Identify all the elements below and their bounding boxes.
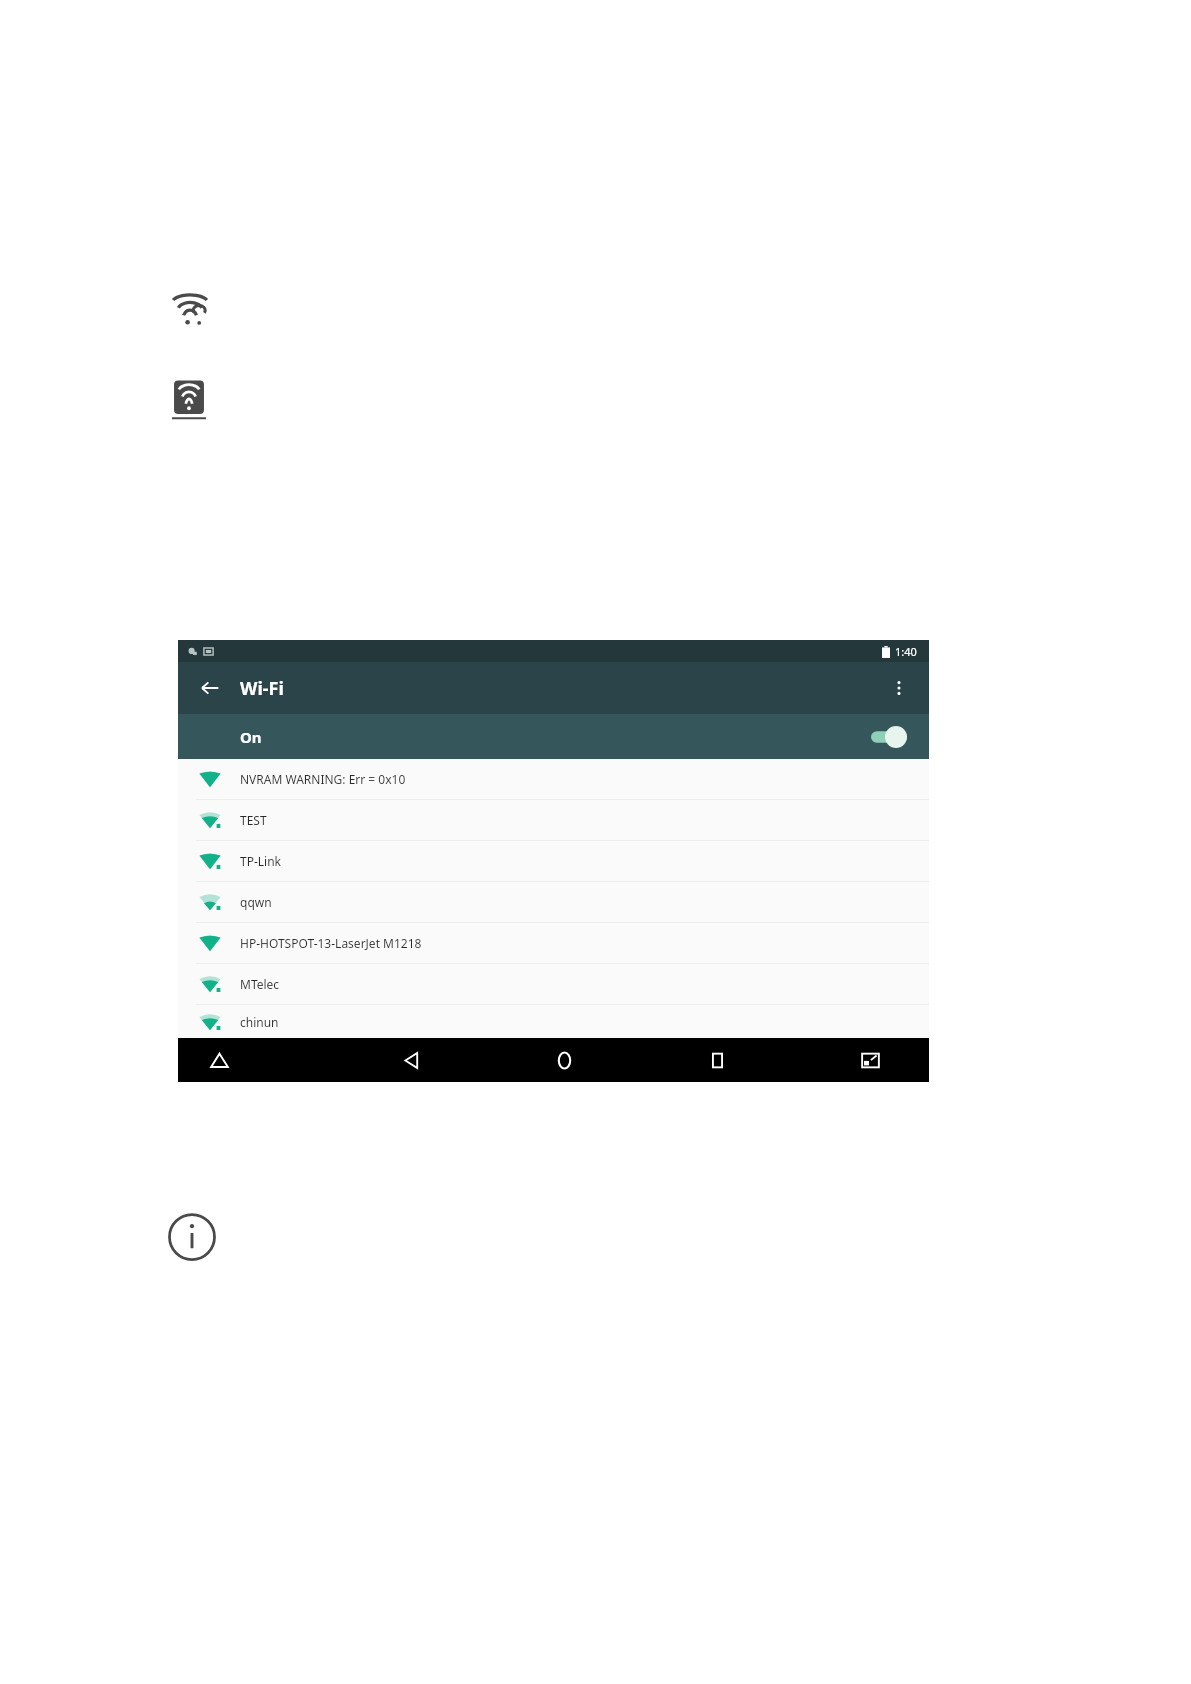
staticText: qqwn bbox=[240, 894, 272, 910]
button[interactable]: On bbox=[178, 714, 929, 759]
staticText: Wi-Fi bbox=[240, 676, 284, 701]
button[interactable]: TEST bbox=[178, 800, 929, 840]
button[interactable]: MTelec bbox=[178, 964, 929, 1004]
button[interactable]: NVRAM WARNING: Err = 0x10 bbox=[178, 759, 929, 799]
staticText: On bbox=[240, 727, 262, 747]
staticText: 1:40 bbox=[895, 644, 917, 659]
button[interactable]: Home bbox=[545, 1041, 583, 1079]
staticText: NVRAM WARNING: Err = 0x10 bbox=[240, 771, 406, 787]
button[interactable]: Recent apps bbox=[698, 1041, 736, 1079]
button[interactable]: More options bbox=[879, 668, 919, 708]
button[interactable]: Screenshot bbox=[851, 1041, 889, 1079]
staticText: chinun bbox=[240, 1014, 279, 1030]
button[interactable]: HP-HOTSPOT-13-LaserJet M1218 bbox=[178, 923, 929, 963]
button[interactable]: Up bbox=[200, 1041, 238, 1079]
button[interactable]: Back bbox=[190, 668, 230, 708]
button[interactable]: TP-Link bbox=[178, 841, 929, 881]
staticText: TEST bbox=[240, 812, 267, 828]
other: Wi-Fi on bbox=[871, 726, 907, 748]
staticText: TP-Link bbox=[240, 853, 282, 869]
staticText: HP-HOTSPOT-13-LaserJet M1218 bbox=[240, 935, 422, 951]
other: Information bbox=[167, 1212, 217, 1262]
other: Wi-Fi help icon bbox=[170, 288, 210, 326]
button[interactable]: chinun bbox=[178, 1005, 929, 1038]
other: Wi-Fi signal icon bbox=[172, 378, 206, 420]
staticText: MTelec bbox=[240, 976, 280, 992]
button[interactable]: Back bbox=[392, 1041, 430, 1079]
button[interactable]: qqwn bbox=[178, 882, 929, 922]
